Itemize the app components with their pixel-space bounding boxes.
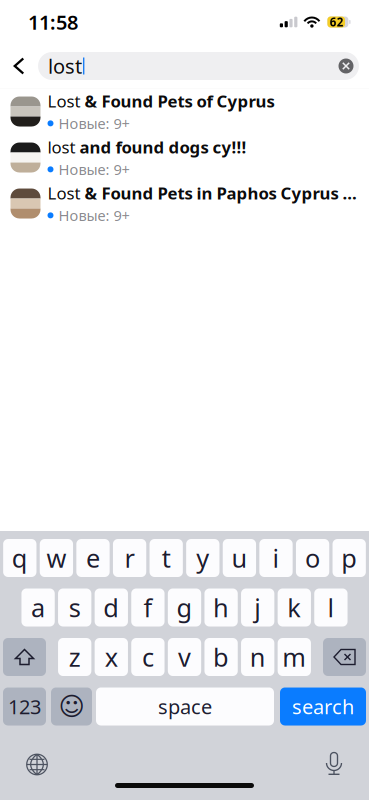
button[interactable]: v [168, 638, 201, 676]
button[interactable]: a [21, 588, 55, 626]
staticText: i [272, 541, 279, 575]
button[interactable]: Lost & Found Pets of Cyprus [0, 88, 369, 134]
staticText: 62 [330, 14, 344, 30]
button[interactable]: w [40, 539, 73, 577]
staticText: q [12, 541, 28, 575]
staticText: Lost & Found Pets of Cyprus [47, 90, 274, 112]
button[interactable]: Dictation [317, 749, 351, 779]
button[interactable]: Clear text [333, 52, 359, 80]
button[interactable]: space [96, 687, 274, 725]
button[interactable]: Shift [3, 638, 46, 676]
staticText: v [178, 640, 191, 674]
button[interactable]: z [58, 638, 91, 676]
staticText: o [305, 541, 320, 575]
staticText: p [341, 541, 357, 575]
button[interactable]: k [278, 588, 311, 626]
button[interactable]: f [131, 588, 164, 626]
staticText: Новые: 9+ [58, 160, 129, 179]
button[interactable]: j [241, 588, 274, 626]
button[interactable]: u [223, 539, 256, 577]
button[interactable]: e [76, 539, 110, 577]
button[interactable]: x [95, 638, 128, 676]
button[interactable]: Emoji [51, 687, 92, 725]
button[interactable]: n [241, 638, 274, 676]
staticText: k [287, 591, 301, 624]
button[interactable]: Change keyboard [20, 749, 54, 779]
staticText: Lost & Found Pets in Paphos Cyprus (… [47, 182, 359, 204]
button[interactable]: c [131, 638, 164, 676]
staticText: n [250, 640, 266, 674]
staticText: u [231, 541, 247, 575]
staticText: y [196, 541, 209, 575]
button[interactable]: i [259, 539, 293, 577]
button[interactable]: Lost & Found Pets in Paphos Cyprus (… [0, 180, 369, 226]
staticText: s [69, 591, 81, 624]
staticText: c [142, 640, 154, 674]
button[interactable]: y [186, 539, 219, 577]
staticText: r [125, 541, 135, 575]
staticText: Новые: 9+ [58, 206, 129, 225]
staticText: g [176, 591, 192, 624]
staticText: ☺ [58, 692, 84, 721]
staticText: l [327, 591, 334, 624]
staticText: search [292, 693, 354, 720]
staticText: e [86, 541, 100, 575]
staticText: Новые: 9+ [58, 114, 129, 133]
button[interactable]: b [204, 638, 238, 676]
staticText: space [158, 693, 212, 720]
button[interactable]: p [332, 539, 366, 577]
button[interactable]: search [280, 687, 366, 725]
button[interactable]: s [58, 588, 91, 626]
staticText: m [282, 640, 306, 674]
button[interactable]: r [113, 539, 146, 577]
button[interactable]: l [314, 588, 347, 626]
button[interactable]: h [204, 588, 238, 626]
button[interactable]: m [278, 638, 311, 676]
staticText: z [69, 640, 81, 674]
staticText: h [213, 591, 229, 624]
staticText: w [46, 541, 66, 575]
button[interactable]: lost and found dogs cy!!! [0, 134, 369, 180]
staticText: lost [48, 53, 82, 79]
button[interactable]: d [95, 588, 128, 626]
staticText: j [254, 591, 261, 624]
staticText: x [105, 640, 118, 674]
staticText: d [103, 591, 119, 624]
button[interactable]: t [149, 539, 183, 577]
staticText: b [213, 640, 229, 674]
button[interactable]: Back [0, 44, 38, 88]
button[interactable]: o [296, 539, 329, 577]
staticText: lost and found dogs cy!!! [47, 136, 246, 158]
staticText: a [31, 591, 45, 624]
button[interactable]: g [168, 588, 201, 626]
staticText: 11:58 [28, 9, 78, 35]
staticText: 123 [8, 693, 41, 720]
staticText: t [162, 541, 171, 575]
button[interactable]: q [3, 539, 36, 577]
button[interactable]: Delete [323, 638, 366, 676]
button[interactable]: 123 [3, 687, 46, 725]
staticText: f [143, 591, 152, 624]
